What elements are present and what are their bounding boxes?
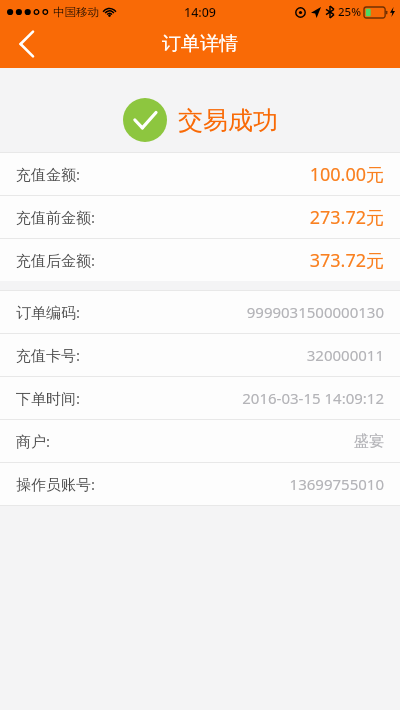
button[interactable]: 充值金额: bbox=[0, 153, 400, 195]
button[interactable]: 充值后金额: bbox=[0, 239, 400, 281]
staticText: 25% bbox=[338, 4, 361, 20]
staticText: 373.72元 bbox=[309, 248, 384, 273]
staticText: 交易成功 bbox=[178, 105, 278, 136]
staticText: 充值卡号: bbox=[16, 345, 81, 365]
button[interactable]: 充值前金额: bbox=[0, 196, 400, 238]
staticText: 充值后金额: bbox=[16, 250, 96, 270]
button[interactable]: Back bbox=[0, 22, 54, 66]
staticText: 100.00元 bbox=[309, 162, 384, 187]
button[interactable]: 订单编码: bbox=[0, 291, 400, 333]
staticText: 14:09 bbox=[184, 4, 217, 21]
staticText: 273.72元 bbox=[309, 205, 384, 230]
staticText: 13699755010 bbox=[289, 474, 384, 494]
staticText: 操作员账号: bbox=[16, 474, 96, 494]
button[interactable]: 充值卡号: bbox=[0, 334, 400, 376]
staticText: 2016-03-15 14:09:12 bbox=[242, 388, 384, 408]
staticText: 9999031500000130 bbox=[246, 302, 384, 322]
staticText: 盛宴 bbox=[354, 432, 384, 451]
staticText: 商户: bbox=[16, 431, 51, 451]
staticText: 订单编码: bbox=[16, 302, 81, 322]
staticText: 订单详情 bbox=[162, 32, 238, 56]
staticText: 320000011 bbox=[306, 345, 384, 365]
button[interactable]: 操作员账号: bbox=[0, 463, 400, 505]
staticText: 充值金额: bbox=[16, 164, 81, 184]
staticText: 下单时间: bbox=[16, 388, 81, 408]
button[interactable]: 下单时间: bbox=[0, 377, 400, 419]
staticText: 中国移动 bbox=[53, 5, 99, 19]
staticText: 充值前金额: bbox=[16, 207, 96, 227]
button[interactable]: 商户: bbox=[0, 420, 400, 462]
